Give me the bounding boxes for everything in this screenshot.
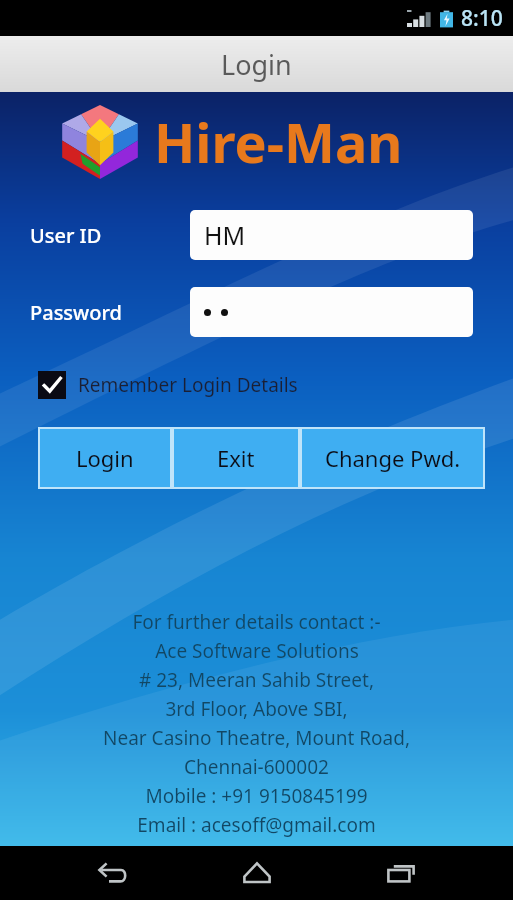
button[interactable]: Back — [80, 846, 144, 900]
staticText: 8:10 — [461, 4, 503, 33]
staticText: User ID — [30, 222, 102, 249]
staticText: HM — [204, 218, 246, 252]
button[interactable]: HM — [190, 210, 473, 260]
staticText: Change Pwd. — [325, 443, 461, 473]
staticText: Chennai-600002 — [184, 754, 329, 780]
staticText: Login — [76, 443, 134, 473]
staticText: Mobile : +91 9150845199 — [145, 783, 368, 809]
staticText: Hire-Man — [154, 105, 403, 179]
button[interactable]: Change Pwd. — [302, 429, 483, 487]
staticText: Near Casino Theatre, Mount Road, — [103, 725, 410, 751]
button[interactable]: Login — [40, 429, 170, 487]
staticText: Ace Software Solutions — [155, 638, 359, 664]
staticText: Exit — [217, 443, 255, 473]
staticText: Email : acesoff@gmail.com — [137, 812, 376, 838]
button[interactable]: Remember Login Details — [38, 371, 298, 399]
button[interactable]: Home — [225, 846, 289, 900]
button[interactable]: Recent apps — [369, 846, 433, 900]
staticText: # 23, Meeran Sahib Street, — [139, 667, 374, 693]
staticText: For further details contact :- — [132, 609, 381, 635]
button[interactable] — [190, 287, 473, 337]
staticText: Remember Login Details — [78, 372, 298, 398]
staticText: 3rd Floor, Above SBI, — [165, 696, 348, 722]
button[interactable]: Exit — [174, 429, 298, 487]
staticText: Password — [30, 299, 122, 326]
staticText: Login — [221, 46, 292, 83]
